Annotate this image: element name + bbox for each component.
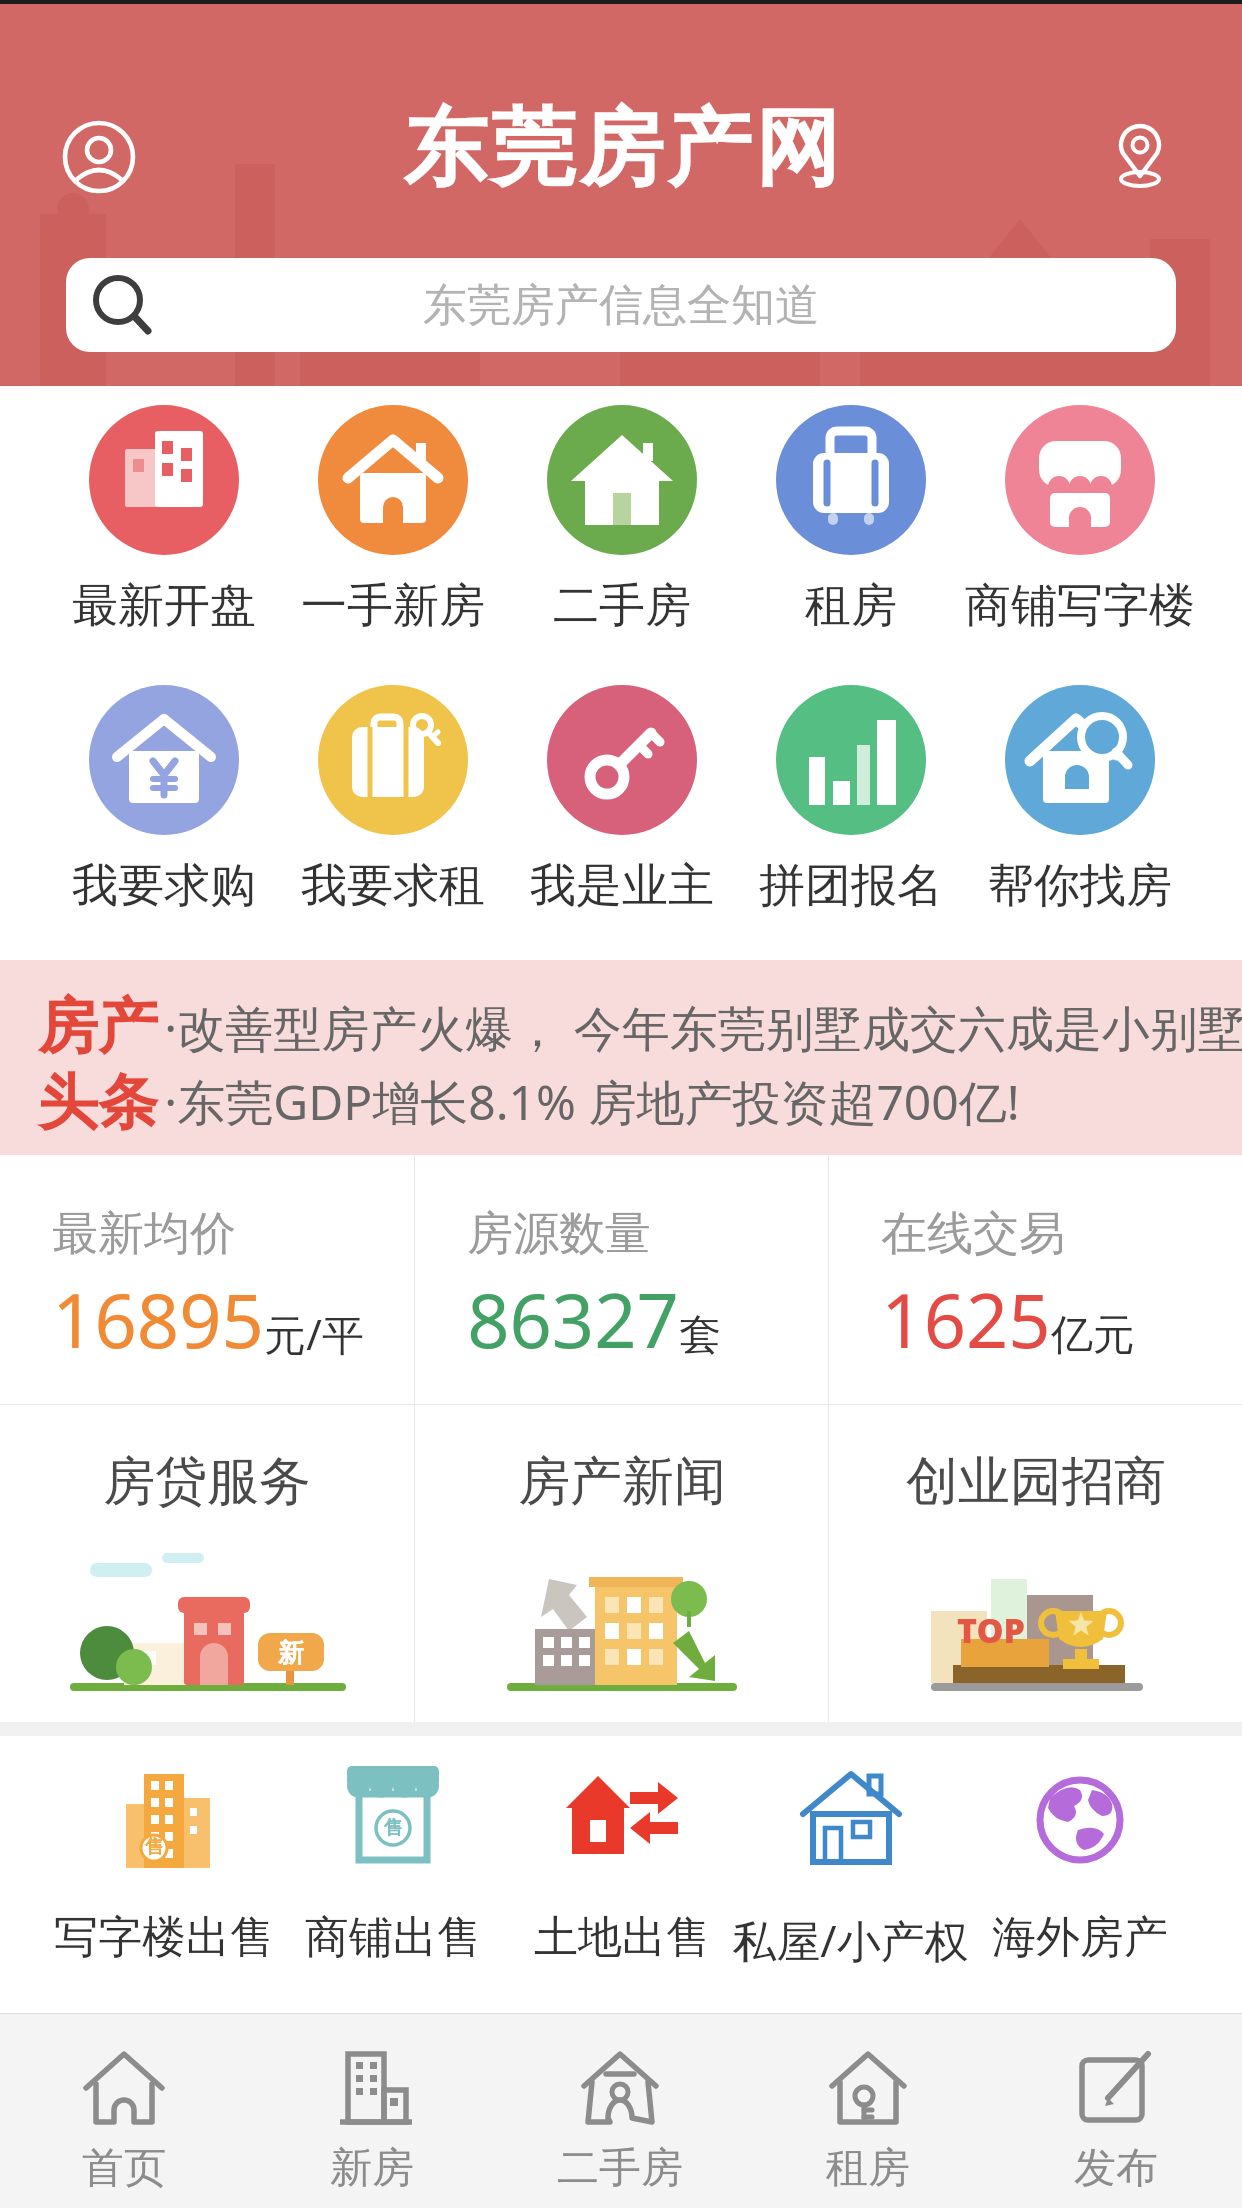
staticText: 元/平 [264,1305,364,1362]
button[interactable]: 最新开盘 [49,405,278,635]
button[interactable]: 房产 [38,974,1242,1155]
staticText: 1625 [881,1269,1051,1370]
staticText: 创业园招商 [906,1449,1166,1515]
staticText: 拼团报名 [759,857,943,915]
staticText: 新 [278,1637,304,1670]
button[interactable]: 在线交易 [829,1155,1242,1404]
button[interactable]: 创业园招商 [829,1405,1242,1722]
staticText: TOP [957,1607,1025,1653]
button[interactable]: 售 [49,1764,278,1965]
staticText: 帮你找房 [988,857,1172,915]
staticText: 最新开盘 [72,577,256,635]
staticText: 套 [679,1309,721,1362]
button[interactable]: 海外房产 [965,1764,1194,1965]
button[interactable]: 我是业主 [507,685,736,915]
button[interactable]: 首页 [0,2014,248,2208]
button[interactable]: 房源数量 [415,1155,828,1404]
button[interactable] [1102,116,1178,192]
staticText: 商铺写字楼 [965,577,1195,635]
staticText: ·改善型房产火爆， 今年东莞别墅成交六成是小别墅 [164,995,1242,1061]
button[interactable]: 商铺写字楼 [965,405,1194,635]
button[interactable]: 拼团报名 [736,685,965,915]
button[interactable]: 发布 [992,2014,1240,2208]
button[interactable]: 帮你找房 [965,685,1194,915]
staticText: 房产 [38,989,158,1065]
staticText: 房源数量 [467,1205,651,1263]
staticText: 二手房 [553,577,691,635]
button[interactable]: 新房 [248,2014,496,2208]
button[interactable]: 房贷服务 [0,1405,414,1722]
staticText: 我是业主 [530,857,714,915]
staticText: 土地出售 [534,1910,710,1965]
staticText: 东莞房产信息全知道 [423,278,819,333]
staticText: 在线交易 [881,1205,1065,1263]
staticText: 海外房产 [992,1910,1168,1965]
button[interactable]: 东莞房产信息全知道 [66,258,1176,352]
staticText: 写字楼出售 [54,1910,274,1965]
staticText: 私屋/小产权 [732,1910,969,1970]
button[interactable]: 私屋/小产权 [736,1764,965,1970]
staticText: 86327 [467,1269,679,1370]
button[interactable]: 房产新闻 [415,1405,828,1722]
staticText: 头条 [38,1065,158,1141]
staticText: 东莞房产网 [401,96,841,202]
button[interactable]: 土地出售 [507,1764,736,1965]
staticText: 售 [145,1835,164,1859]
button[interactable]: 我要求租 [278,685,507,915]
button[interactable]: 一手新房 [278,405,507,635]
staticText: 商铺出售 [305,1910,481,1965]
button[interactable] [62,120,136,194]
staticText: 发布 [1074,2142,1158,2195]
staticText: 我要求购 [72,857,256,915]
staticText: ·东莞GDP增长8.1% 房地产投资超700亿! [164,1069,1020,1135]
staticText: 房贷服务 [103,1449,311,1515]
button[interactable]: 二手房 [507,405,736,635]
staticText: 一手新房 [301,577,485,635]
staticText: 二手房 [557,2142,683,2195]
staticText: 最新均价 [52,1205,236,1263]
button[interactable]: 我要求购 [49,685,278,915]
button[interactable]: 租房 [744,2014,992,2208]
staticText: 亿元 [1051,1309,1135,1362]
staticText: 首页 [82,2142,166,2195]
button[interactable]: 二手房 [496,2014,744,2208]
staticText: 新房 [330,2142,414,2195]
staticText: 售 [384,1816,403,1840]
staticText: 租房 [805,577,897,635]
staticText: 房产新闻 [518,1449,726,1515]
staticText: 我要求租 [301,857,485,915]
staticText: 租房 [826,2142,910,2195]
button[interactable]: 售 [278,1764,507,1965]
staticText: 16895 [52,1269,264,1370]
button[interactable]: 最新均价 [0,1155,414,1404]
button[interactable]: 租房 [736,405,965,635]
